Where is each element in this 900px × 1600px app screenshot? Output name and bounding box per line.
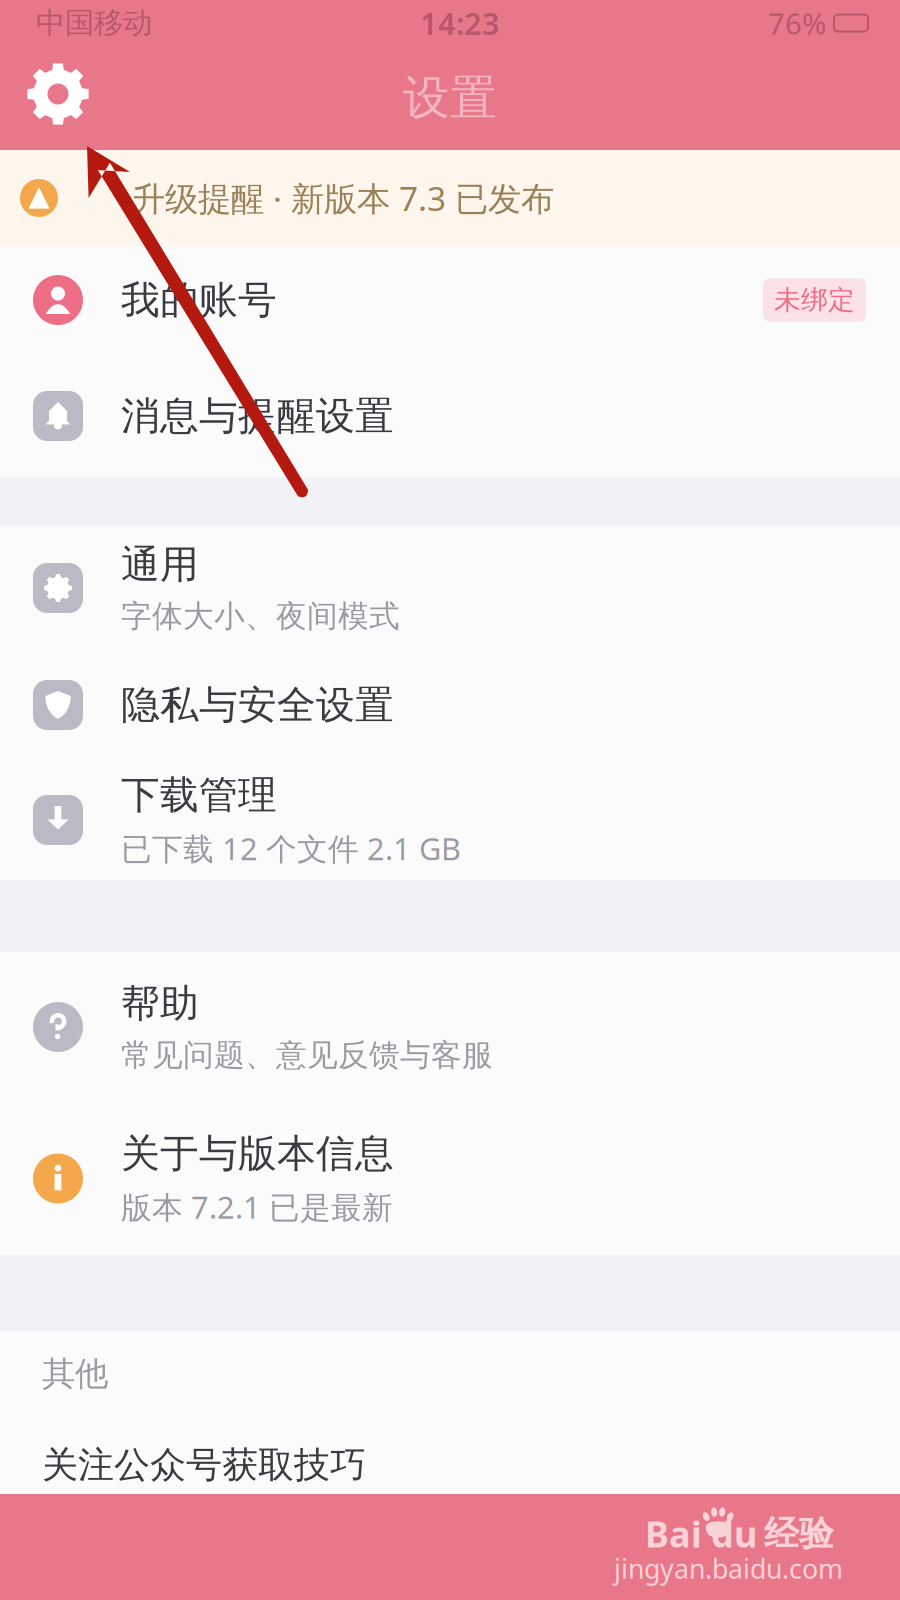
staticText: 字体大小、夜间模式 — [121, 597, 400, 635]
staticText: 关注公众号获取技巧 — [42, 1443, 366, 1487]
button[interactable]: 关于与版本信息 — [0, 1102, 900, 1255]
button[interactable]: 帮助 — [0, 952, 900, 1102]
staticText: 已下载 12 个文件 2.1 GB — [121, 828, 461, 869]
staticText: 14:23 — [420, 3, 500, 43]
staticText: 升级提醒 · 新版本 7.3 已发布 — [132, 176, 554, 220]
staticText: jingyan.baidu.com — [614, 1551, 843, 1586]
staticText: 版本 7.2.1 已是最新 — [121, 1186, 393, 1227]
staticText: 设置 — [403, 69, 497, 127]
staticText: 76% — [768, 3, 826, 42]
staticText: 通用 — [121, 541, 199, 588]
staticText: 未绑定 — [774, 284, 855, 316]
button[interactable]: 升级提醒 · 新版本 7.3 已发布 — [0, 150, 900, 246]
staticText: 下载管理 — [121, 771, 277, 819]
staticText: 我的账号 — [121, 276, 277, 324]
staticText: 帮助 — [121, 980, 199, 1027]
staticText: du — [711, 1510, 757, 1557]
button[interactable]: 隐私与安全设置 — [0, 650, 900, 760]
button[interactable]: 我的账号 — [0, 246, 900, 354]
staticText: 关于与版本信息 — [121, 1130, 394, 1177]
button[interactable]: 通用 — [0, 526, 900, 650]
button[interactable]: 关注公众号获取技巧 — [0, 1417, 900, 1513]
staticText: 其他 — [42, 1353, 108, 1394]
staticText: 消息与提醒设置 — [121, 392, 394, 440]
staticText: Bai — [645, 1510, 702, 1557]
staticText: 隐私与安全设置 — [121, 681, 394, 729]
staticText: 经验 — [764, 1512, 834, 1555]
button[interactable]: 消息与提醒设置 — [0, 354, 900, 478]
staticText: 中国移动 — [36, 5, 152, 41]
staticText: 常见问题、意见反馈与客服 — [121, 1036, 493, 1074]
button[interactable]: 下载管理 — [0, 760, 900, 880]
